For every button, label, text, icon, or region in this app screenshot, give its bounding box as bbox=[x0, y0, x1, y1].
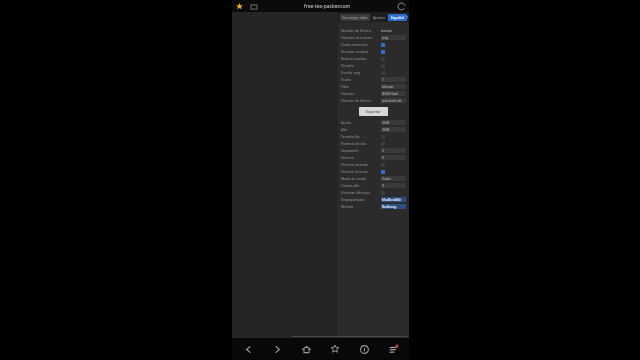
button[interactable]: Filtro bbox=[338, 83, 409, 90]
button[interactable]: Formato de textura bbox=[338, 34, 409, 41]
button[interactable]: Detectar idénticos bbox=[338, 189, 409, 196]
staticText: Ancho bbox=[341, 120, 379, 125]
staticText: Límites alfa bbox=[341, 183, 379, 188]
staticText: free-tex-packer.com bbox=[304, 3, 351, 10]
staticText: Recortar cuadros bbox=[341, 49, 379, 54]
staticText: 0 bbox=[382, 156, 384, 160]
button[interactable]: Escribir png bbox=[338, 69, 409, 76]
staticText: Nombre de fichero bbox=[341, 28, 379, 33]
staticText: Escala bbox=[341, 77, 379, 82]
staticText: Filtro bbox=[341, 84, 379, 89]
staticText: Formato de textura bbox=[341, 35, 379, 40]
staticText: Entorno bbox=[341, 155, 379, 160]
button[interactable]: Permitir fusionar bbox=[338, 168, 409, 175]
button[interactable]: Elección de fichero bbox=[338, 97, 409, 104]
button[interactable]: Nombre de fichero bbox=[338, 27, 409, 34]
staticText: Permitir fusionar bbox=[341, 169, 379, 174]
staticText: Tamaño fijo bbox=[341, 134, 379, 139]
button[interactable]: Potencia de dos bbox=[338, 140, 409, 147]
staticText: 2048 bbox=[382, 128, 390, 132]
staticText: Método bbox=[341, 204, 379, 209]
staticText: 0 bbox=[382, 184, 384, 188]
button[interactable]: Permitir rotación bbox=[338, 161, 409, 168]
staticText: Separación bbox=[341, 148, 379, 153]
staticText: 1 bbox=[382, 78, 384, 82]
button[interactable]: Reducir cuadros bbox=[338, 55, 409, 62]
staticText: texture bbox=[381, 29, 392, 33]
button[interactable]: Quitar extensión bbox=[338, 41, 409, 48]
button[interactable]: Recortar cuadros bbox=[338, 48, 409, 55]
staticText: Reducir cuadros bbox=[341, 56, 379, 61]
button[interactable]: Alto bbox=[338, 126, 409, 133]
button[interactable]: Ancho bbox=[338, 119, 409, 126]
button[interactable]: Empaquetador bbox=[338, 196, 409, 203]
staticText: Escribir png bbox=[341, 70, 379, 75]
staticText: 2 bbox=[382, 149, 384, 153]
button[interactable]: Forward bbox=[264, 338, 290, 360]
button[interactable]: Tabs bbox=[351, 338, 377, 360]
button[interactable]: Descargar atlas bbox=[340, 14, 370, 21]
staticText: Detectar idénticos bbox=[341, 190, 379, 195]
staticText: Exportar bbox=[366, 109, 381, 114]
staticText: Alto bbox=[341, 127, 379, 132]
staticText: png bbox=[382, 36, 388, 40]
button[interactable]: Tamaño fijo bbox=[338, 133, 409, 140]
button[interactable]: Tamaño bbox=[338, 62, 409, 69]
button[interactable]: Bookmarks bbox=[322, 338, 348, 360]
staticText: Español bbox=[391, 15, 404, 20]
button[interactable]: Modo de escala bbox=[338, 175, 409, 182]
staticText: Formato bbox=[341, 91, 379, 96]
staticText: Descargar atlas bbox=[342, 15, 368, 20]
button[interactable]: Stop loading bbox=[396, 1, 407, 12]
button[interactable]: Formato bbox=[338, 90, 409, 97]
staticText: Quitar extensión bbox=[341, 42, 379, 47]
button[interactable]: Español bbox=[388, 14, 407, 21]
staticText: 2048 bbox=[382, 121, 390, 125]
button[interactable]: Bookmarks bbox=[234, 1, 245, 12]
staticText: Tamaño bbox=[341, 63, 379, 68]
button[interactable]: Entorno bbox=[338, 154, 409, 161]
button[interactable]: Back bbox=[235, 338, 261, 360]
staticText: BestLong-SideFit bbox=[382, 205, 405, 209]
button[interactable]: Tabs bbox=[248, 1, 259, 12]
button[interactable]: Límites alfa bbox=[338, 182, 409, 189]
staticText: JSON-Hash bbox=[382, 92, 399, 96]
staticText: Potencia de dos bbox=[341, 141, 379, 146]
staticText: MaxRectsBin bbox=[382, 198, 402, 202]
button[interactable]: Método bbox=[338, 203, 409, 210]
staticText: Ajustes bbox=[373, 15, 385, 20]
staticText: Modo de escala bbox=[341, 176, 379, 181]
button[interactable]: Exportar bbox=[359, 107, 388, 116]
button[interactable]: Home bbox=[293, 338, 319, 360]
staticText: Permitir rotación bbox=[341, 162, 379, 167]
staticText: bilinear bbox=[382, 85, 394, 89]
staticText: json-hash.ett bbox=[382, 99, 402, 103]
staticText: Empaquetador bbox=[341, 197, 379, 202]
button[interactable]: Ajustes bbox=[372, 15, 386, 20]
staticText: Elección de fichero bbox=[341, 98, 379, 103]
staticText: Todos bbox=[382, 177, 391, 181]
button[interactable]: Separación bbox=[338, 147, 409, 154]
button[interactable]: Escala bbox=[338, 76, 409, 83]
button[interactable]: Menu bbox=[380, 338, 406, 360]
